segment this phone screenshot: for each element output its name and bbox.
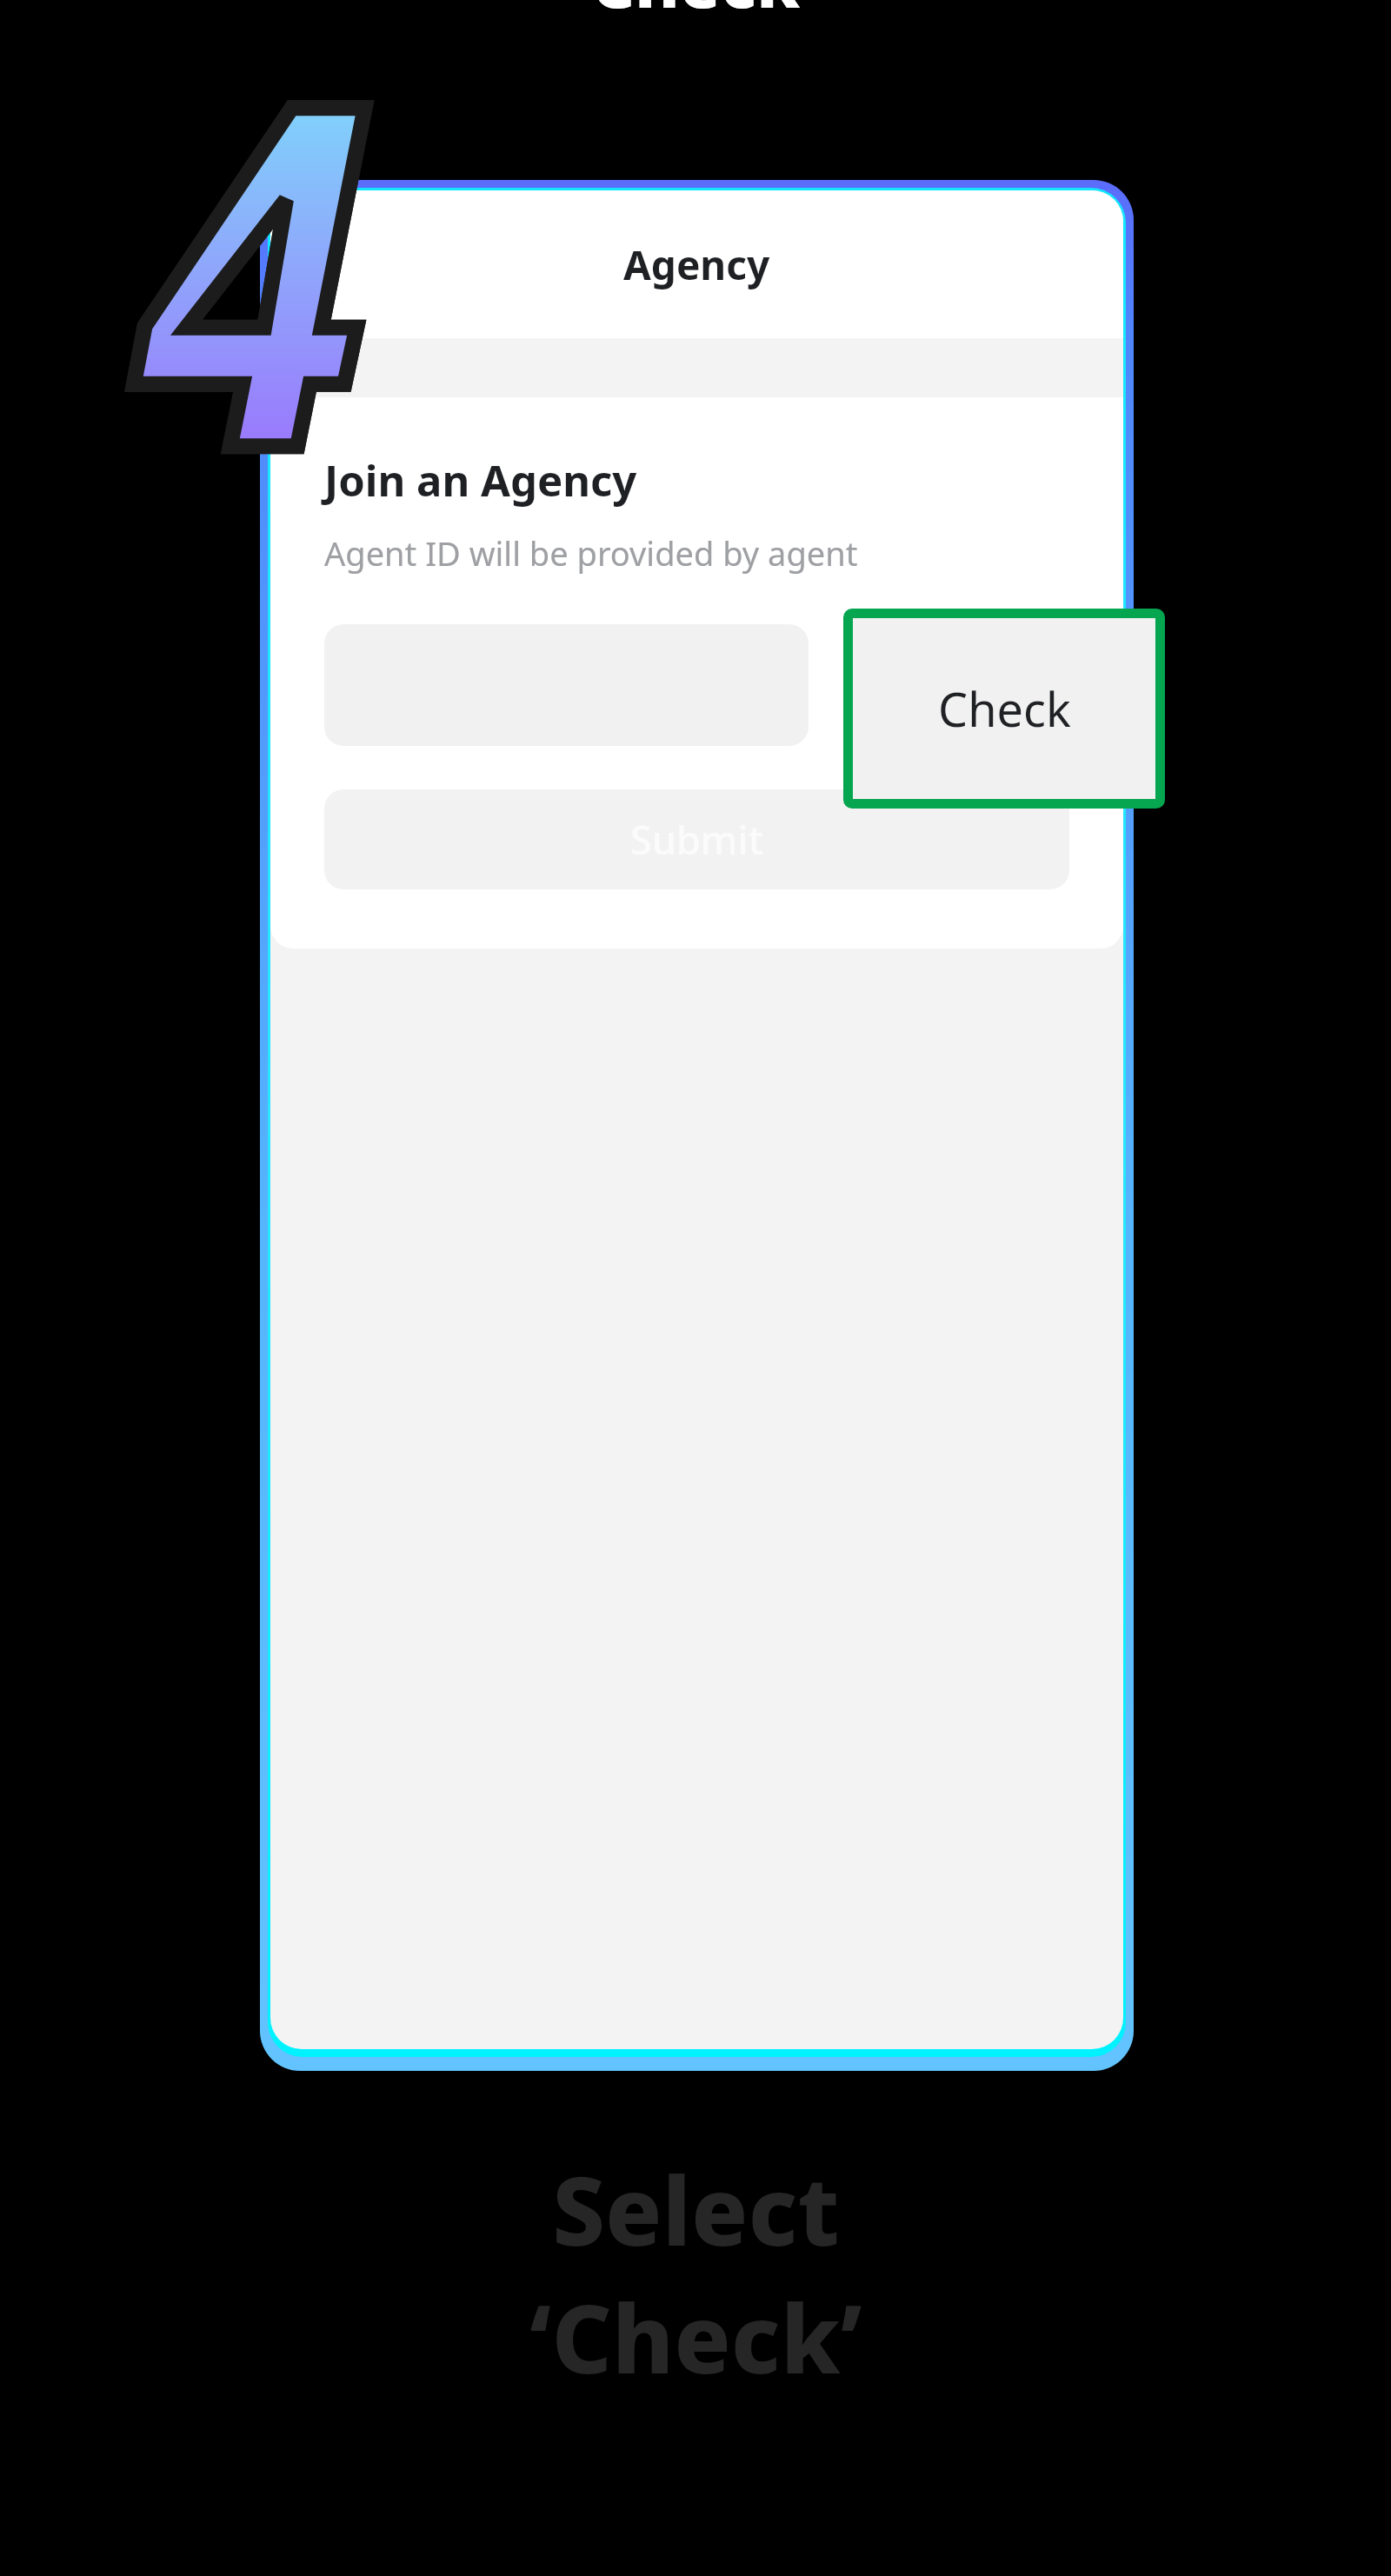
staticText: Check bbox=[877, 656, 1001, 715]
button[interactable]: Check bbox=[853, 618, 1155, 799]
staticText: Submit bbox=[630, 813, 763, 866]
button[interactable]: Submit bbox=[324, 789, 1069, 889]
staticText: Agent ID will be provided by agent bbox=[324, 530, 858, 576]
staticText: Join an Agency bbox=[324, 451, 637, 509]
staticText: Select bbox=[552, 2146, 840, 2273]
staticText: Check bbox=[938, 676, 1071, 741]
staticText: Agency bbox=[623, 237, 770, 292]
button[interactable]: Check bbox=[809, 624, 1069, 746]
staticText: ‘Check’ bbox=[529, 2273, 862, 2401]
staticText: Check bbox=[591, 0, 800, 28]
